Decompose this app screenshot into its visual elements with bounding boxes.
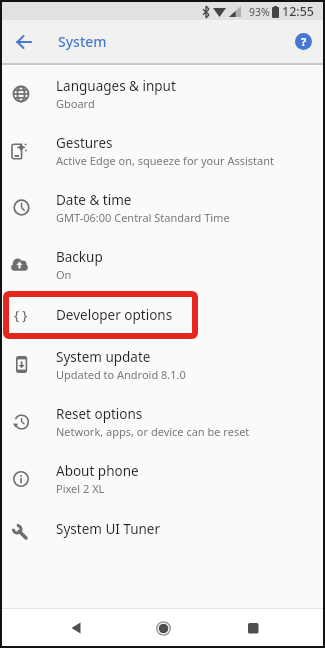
staticText: Network, apps, or device can be reset (56, 424, 250, 439)
staticText: System UI Tuner (56, 520, 161, 538)
button[interactable]: Date & time (2, 179, 323, 236)
staticText: System update (56, 348, 151, 366)
button[interactable]: { } (2, 293, 323, 336)
button[interactable] (10, 28, 38, 56)
button[interactable] (241, 616, 265, 640)
staticText: Gestures (56, 134, 113, 152)
button[interactable]: System UI Tuner (2, 507, 323, 550)
button[interactable] (64, 616, 88, 640)
button[interactable]: ? (295, 33, 312, 50)
button[interactable]: Languages & input (2, 65, 323, 122)
staticText: 93% (249, 5, 270, 19)
staticText: Languages & input (56, 77, 176, 95)
staticText: On (56, 267, 72, 282)
button[interactable]: Backup (2, 236, 323, 293)
staticText: System (58, 32, 107, 51)
button[interactable]: System update (2, 336, 323, 393)
button[interactable]: About phone (2, 450, 323, 507)
button[interactable]: Gestures (2, 122, 323, 179)
staticText: Updated to Android 8.1.0 (56, 367, 186, 382)
staticText: Date & time (56, 191, 132, 209)
staticText: About phone (56, 462, 139, 480)
staticText: { } (14, 306, 28, 324)
button[interactable] (151, 616, 175, 640)
staticText: 12:55 (282, 3, 315, 20)
staticText: Pixel 2 XL (56, 481, 105, 496)
staticText: GMT-06:00 Central Standard Time (56, 210, 230, 225)
staticText: Backup (56, 248, 103, 266)
button[interactable]: Reset options (2, 393, 323, 450)
staticText: Active Edge on, squeeze for your Assista… (56, 153, 274, 168)
staticText: ? (301, 34, 307, 49)
staticText: Developer options (56, 306, 173, 324)
staticText: Gboard (56, 96, 95, 111)
staticText: Reset options (56, 405, 143, 423)
